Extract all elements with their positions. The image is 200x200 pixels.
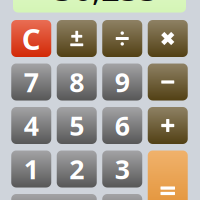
button[interactable]: 3	[102, 150, 142, 187]
staticText: 5	[69, 108, 84, 143]
staticText: 6	[115, 108, 130, 143]
button[interactable]: Plus minus	[57, 20, 97, 57]
button[interactable]: 2	[57, 150, 97, 187]
staticText: C	[22, 19, 41, 58]
button[interactable]: Minus	[148, 63, 188, 100]
button[interactable]: 6	[102, 107, 142, 144]
button[interactable]: 1	[11, 150, 51, 187]
staticText: 0	[46, 195, 61, 200]
button[interactable]: Clear	[11, 20, 51, 57]
staticText: 2	[69, 151, 84, 187]
staticText: 1	[24, 151, 39, 187]
button[interactable]: 9	[102, 63, 142, 100]
staticText: 7	[24, 64, 39, 100]
button[interactable]: 4	[11, 107, 51, 144]
button[interactable]: 5	[57, 107, 97, 144]
button[interactable]: .	[102, 194, 142, 200]
button[interactable]: 0	[11, 194, 97, 200]
staticText: 3	[115, 151, 130, 187]
staticText: 9	[115, 64, 130, 100]
button[interactable]: Multiply	[148, 20, 188, 57]
staticText: 4	[24, 108, 39, 143]
staticText: 36,233	[54, 0, 158, 10]
staticText: 8	[69, 64, 84, 100]
button[interactable]: Divide	[102, 20, 142, 57]
button[interactable]: Equals	[148, 150, 188, 200]
button[interactable]: 7	[11, 63, 51, 100]
button[interactable]: 8	[57, 63, 97, 100]
button[interactable]: Plus	[148, 107, 188, 144]
staticText: .	[119, 195, 126, 200]
